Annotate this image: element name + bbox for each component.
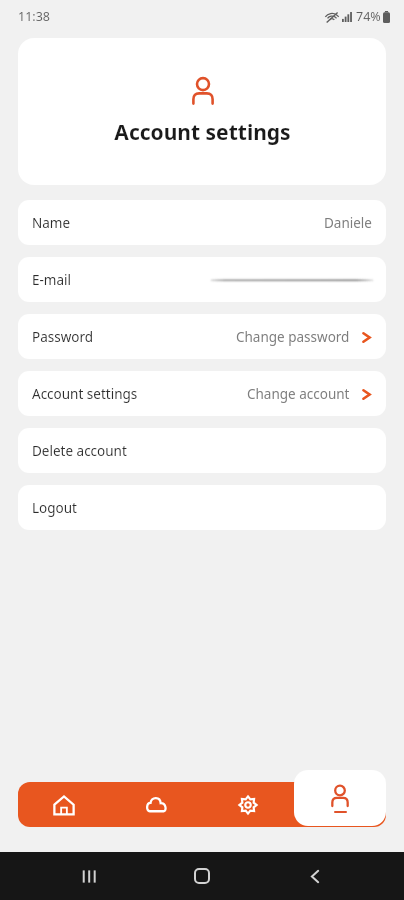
button[interactable]: Password xyxy=(18,314,386,359)
button[interactable]: Account xyxy=(294,769,386,827)
button[interactable]: E-mail xyxy=(18,257,386,302)
button[interactable]: Logout xyxy=(18,485,386,530)
staticText: Change password xyxy=(236,328,350,346)
staticText: Password xyxy=(32,328,94,346)
staticText: 74% xyxy=(356,8,381,25)
button[interactable]: Home xyxy=(18,782,110,827)
button[interactable]: Recents xyxy=(65,852,113,900)
staticText: Account settings xyxy=(32,385,138,403)
staticText: Name xyxy=(32,214,71,232)
button[interactable]: Settings xyxy=(202,782,294,827)
staticText: Change account xyxy=(247,385,350,403)
staticText: Daniele xyxy=(324,214,372,232)
button[interactable]: Home xyxy=(178,852,226,900)
staticText: 11:38 xyxy=(18,8,50,25)
staticText: Account settings xyxy=(114,118,291,147)
staticText: Logout xyxy=(32,499,77,517)
button[interactable]: Account settings xyxy=(18,371,386,416)
staticText: Delete account xyxy=(32,442,127,460)
button[interactable]: Name xyxy=(18,200,386,245)
button[interactable]: Delete account xyxy=(18,428,386,473)
button[interactable]: Back xyxy=(291,852,339,900)
staticText: E-mail xyxy=(32,271,72,289)
button[interactable]: Cloud xyxy=(110,782,202,827)
